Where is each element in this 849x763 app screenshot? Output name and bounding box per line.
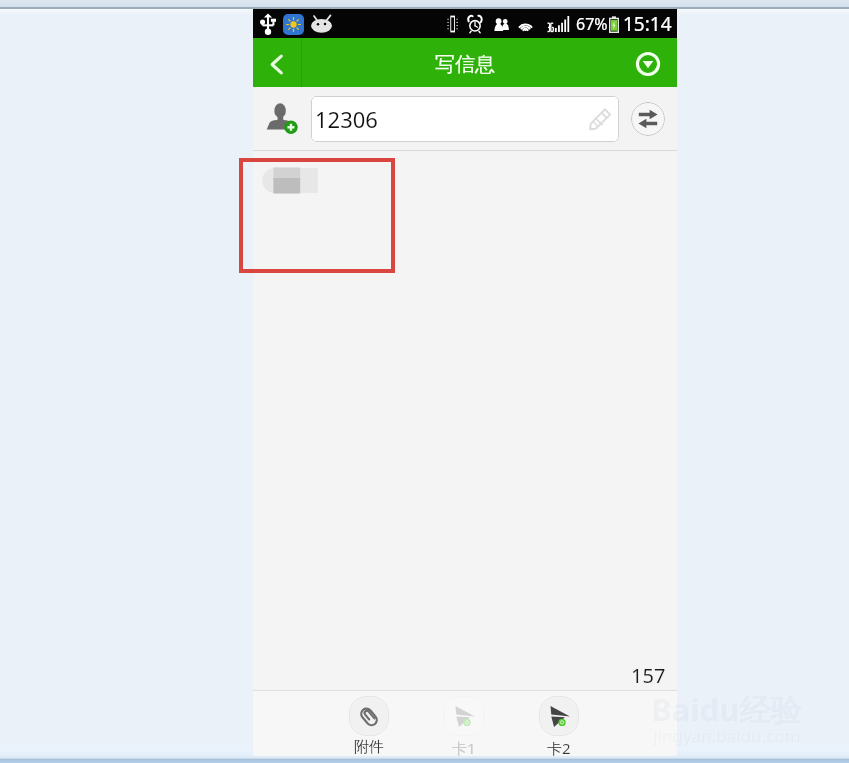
staticText: 67% [576, 13, 608, 35]
staticText: Baidu经验 [650, 687, 801, 729]
staticText: 15:14 [623, 11, 672, 37]
button[interactable]: 卡2 [523, 696, 595, 758]
button[interactable]: 附件 [333, 696, 405, 757]
staticText: 157 [631, 662, 666, 689]
staticText: Baidu经验 [651, 688, 802, 730]
staticText: 附件 [354, 738, 384, 757]
button[interactable]: 12306 [311, 96, 619, 142]
button[interactable]: Add contact [264, 100, 300, 136]
staticText: 写信息 [435, 52, 495, 77]
staticText: 12306 [315, 104, 378, 134]
button[interactable]: Switch SIM [631, 102, 665, 136]
staticText: jingyan.baidu.com [652, 723, 800, 746]
staticText: 卡1 [452, 738, 476, 758]
button[interactable]: 卡1 [428, 696, 500, 758]
button[interactable]: Back [253, 38, 301, 87]
staticText: jingyan.baidu.com [653, 724, 801, 747]
button[interactable]: More options [636, 52, 660, 76]
staticText: 卡2 [547, 738, 571, 758]
